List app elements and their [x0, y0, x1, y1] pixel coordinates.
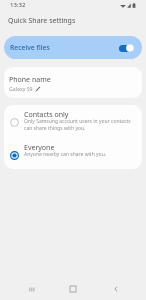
staticText: Only Samsung account users in your conta…	[24, 118, 131, 132]
staticText: Phone name	[9, 75, 51, 85]
staticText: Anyone nearby can share with you.	[24, 151, 107, 158]
staticText: 13:32	[10, 1, 26, 9]
staticText: Receive files	[10, 43, 50, 52]
staticText: Contacts only	[24, 110, 69, 120]
button[interactable]: Back	[104, 278, 128, 300]
button[interactable]: Everyone	[4, 138, 142, 169]
staticText: Quick Share settings	[8, 16, 76, 26]
staticText: Everyone	[24, 143, 55, 153]
button[interactable]: Receive files	[4, 36, 142, 59]
button[interactable]: Home	[61, 278, 85, 300]
staticText: Galaxy S9	[9, 85, 33, 92]
button[interactable]: Contacts only	[4, 105, 142, 138]
button[interactable]: Recents	[19, 278, 43, 300]
button[interactable]: Phone name	[4, 67, 142, 98]
